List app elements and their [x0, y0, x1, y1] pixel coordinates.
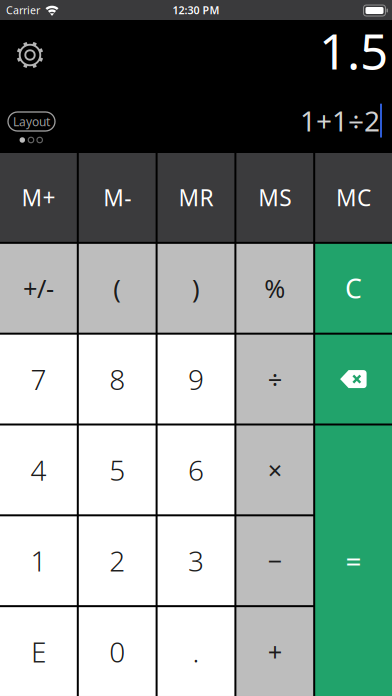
- button[interactable]: [14, 39, 46, 71]
- staticText: 8: [109, 360, 125, 398]
- button[interactable]: MS: [236, 153, 313, 242]
- staticText: +/-: [23, 271, 54, 305]
- button[interactable]: 4: [0, 425, 77, 514]
- button[interactable]: (: [79, 244, 156, 333]
- staticText: −: [268, 544, 282, 577]
- staticText: 3: [188, 542, 204, 579]
- staticText: 0: [109, 633, 125, 670]
- button[interactable]: E: [0, 607, 77, 696]
- staticText: ×: [268, 453, 282, 487]
- staticText: 1+1÷2: [300, 102, 380, 139]
- staticText: 9: [188, 360, 204, 398]
- button[interactable]: 7: [0, 335, 77, 423]
- staticText: M+: [21, 182, 55, 212]
- button[interactable]: .: [158, 607, 234, 696]
- staticText: MS: [258, 182, 291, 212]
- button[interactable]: ×: [236, 425, 313, 514]
- staticText: 6: [188, 451, 204, 488]
- staticText: 12:30 PM: [172, 3, 219, 17]
- button[interactable]: MC: [315, 153, 392, 242]
- button[interactable]: 0: [79, 607, 156, 696]
- button[interactable]: −: [236, 516, 313, 605]
- button[interactable]: M+: [0, 153, 77, 242]
- button[interactable]: ÷: [236, 335, 313, 423]
- staticText: +: [268, 635, 282, 668]
- staticText: 1.5: [319, 17, 388, 83]
- button[interactable]: [315, 335, 392, 423]
- button[interactable]: 1: [0, 516, 77, 605]
- staticText: 2: [109, 542, 125, 579]
- staticText: Carrier: [6, 3, 40, 17]
- staticText: 7: [30, 360, 46, 398]
- button[interactable]: Layout: [8, 112, 55, 131]
- button[interactable]: 3: [158, 516, 234, 605]
- staticText: C: [345, 270, 362, 306]
- button[interactable]: 6: [158, 425, 234, 514]
- staticText: (: [113, 271, 121, 305]
- staticText: 4: [30, 451, 46, 488]
- staticText: .: [192, 633, 199, 670]
- button[interactable]: ): [158, 244, 234, 333]
- staticText: %: [264, 271, 285, 305]
- button[interactable]: MR: [158, 153, 234, 242]
- staticText: E: [31, 633, 46, 670]
- staticText: Layout: [13, 113, 50, 129]
- button[interactable]: %: [236, 244, 313, 333]
- staticText: =: [346, 542, 362, 579]
- button[interactable]: C: [315, 244, 392, 333]
- button[interactable]: 5: [79, 425, 156, 514]
- button[interactable]: M-: [79, 153, 156, 242]
- button[interactable]: +: [236, 607, 313, 696]
- staticText: 5: [109, 451, 125, 488]
- button[interactable]: =: [315, 425, 392, 696]
- button[interactable]: 9: [158, 335, 234, 423]
- button[interactable]: +/-: [0, 244, 77, 333]
- staticText: ): [192, 271, 200, 305]
- staticText: ÷: [268, 362, 282, 396]
- staticText: MR: [178, 182, 213, 212]
- button[interactable]: 2: [79, 516, 156, 605]
- staticText: MC: [336, 182, 371, 212]
- staticText: M-: [103, 182, 131, 212]
- staticText: 1: [30, 542, 46, 579]
- button[interactable]: 8: [79, 335, 156, 423]
